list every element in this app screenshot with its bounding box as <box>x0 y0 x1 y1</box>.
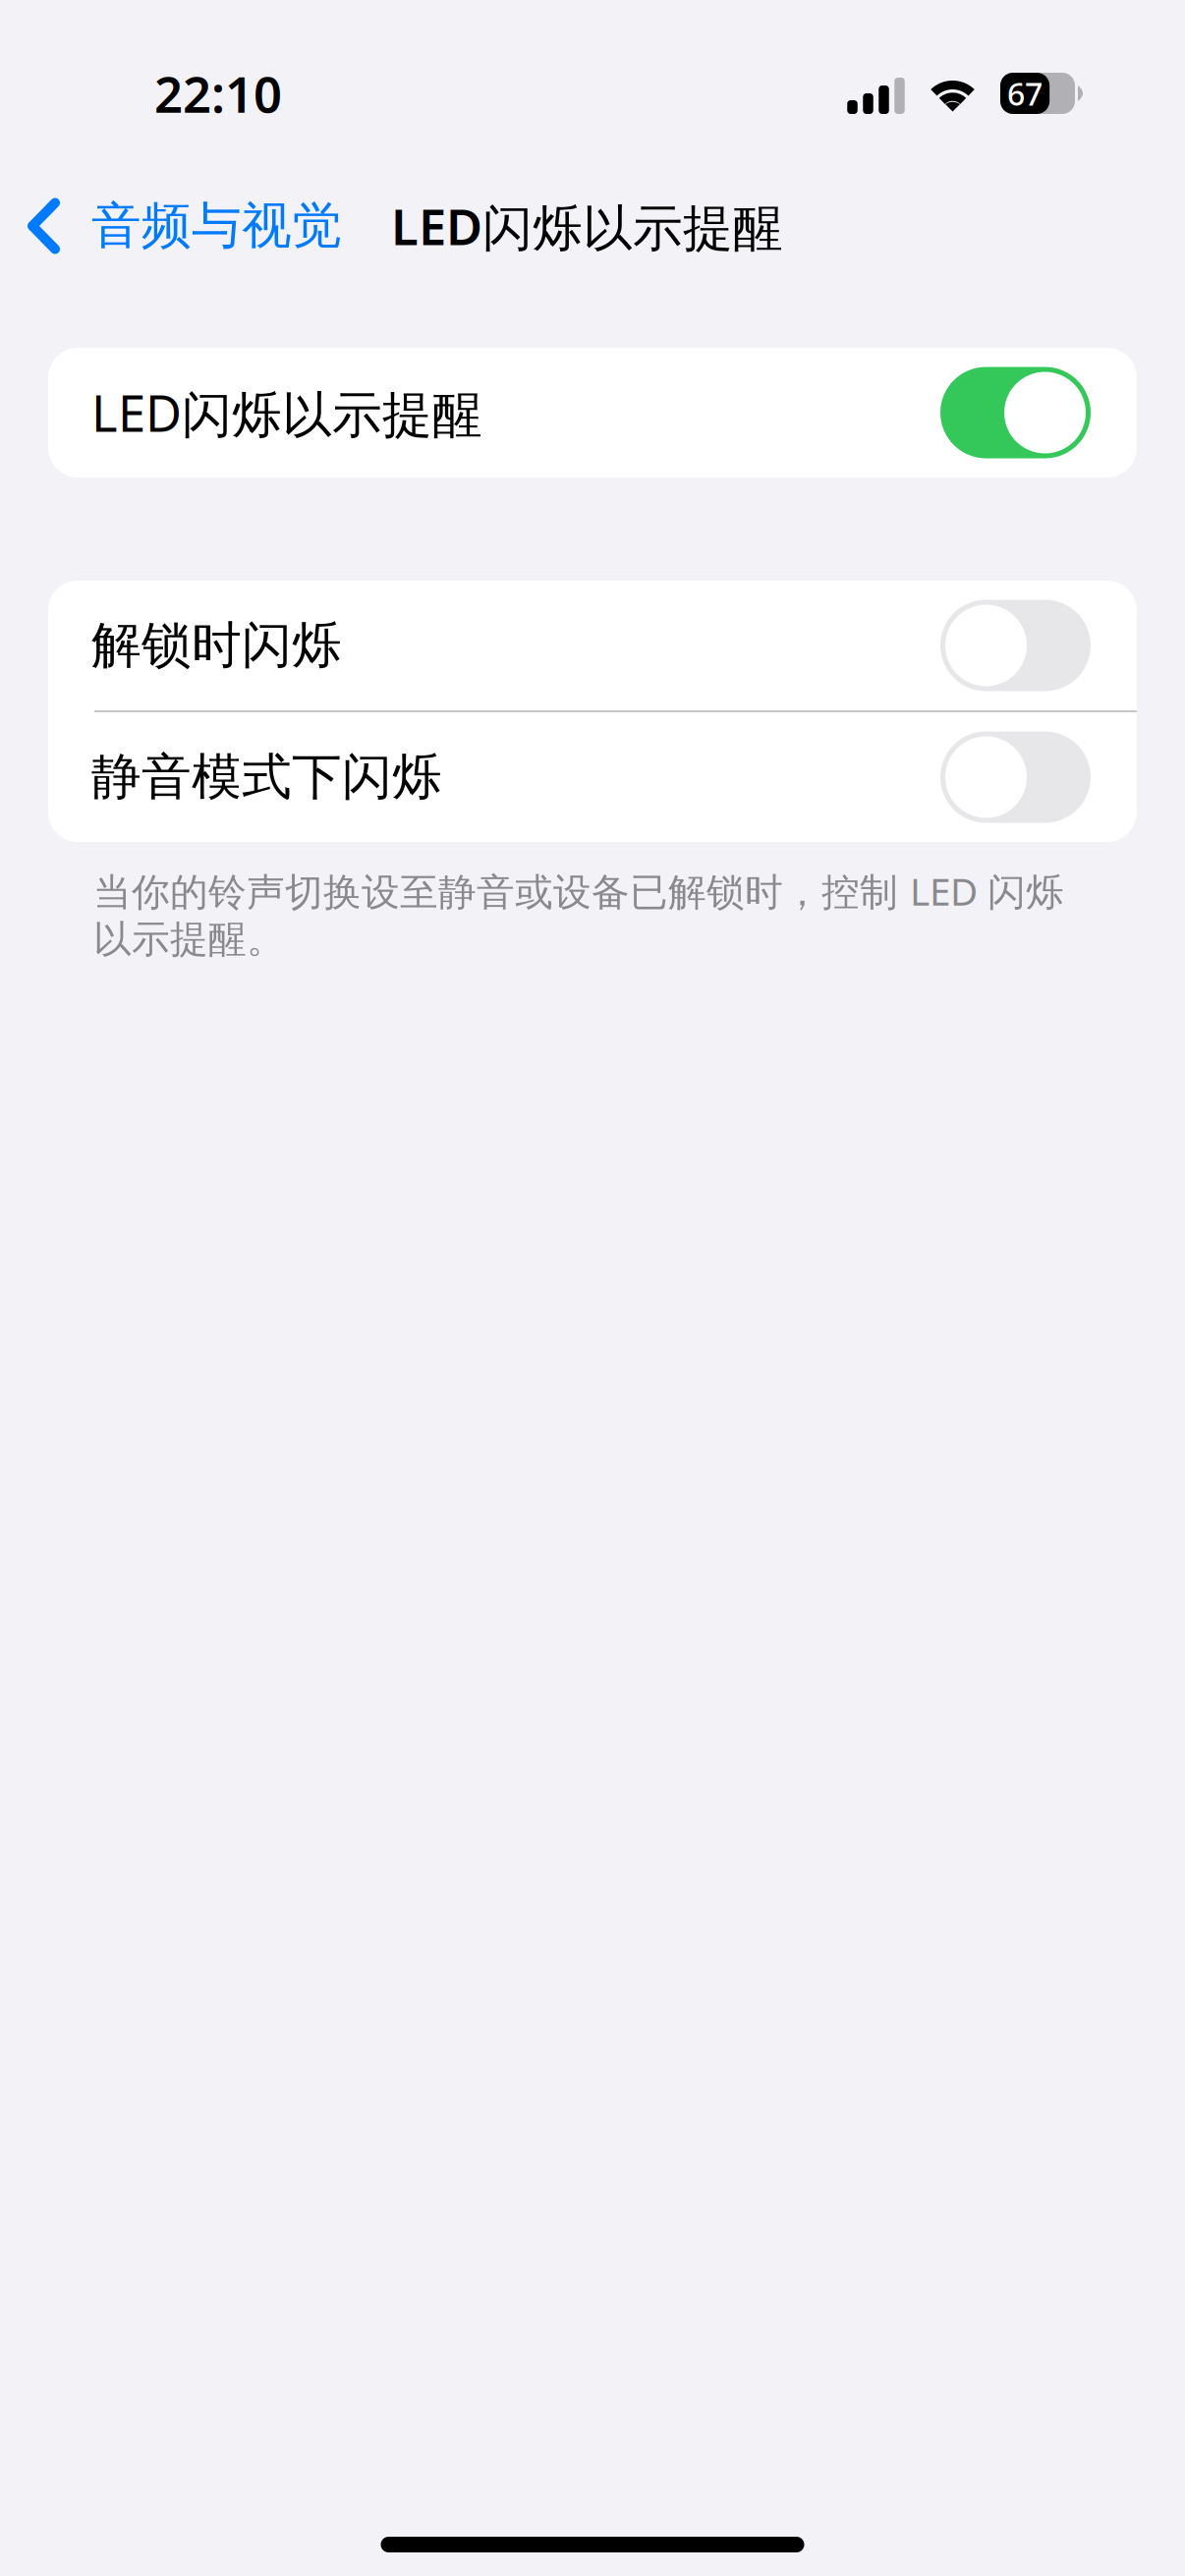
staticText: 音频与视觉 <box>91 195 342 257</box>
button[interactable]: 解锁时闪烁 <box>48 581 1137 710</box>
staticText: 67 <box>1007 73 1043 114</box>
staticText: LED闪烁以示提醒 <box>391 193 783 259</box>
staticText: 当你的铃声切换设至静音或设备已解锁时，控制 LED 闪烁以示提醒。 <box>93 866 1064 963</box>
button[interactable]: 静音模式下闪烁 <box>48 712 1137 842</box>
staticText: LED闪烁以示提醒 <box>91 379 482 446</box>
button[interactable]: LED闪烁以示提醒 <box>48 348 1137 477</box>
staticText: 22:10 <box>154 60 282 126</box>
button[interactable]: 音频与视觉 <box>0 170 342 282</box>
staticText: 解锁时闪烁 <box>91 615 342 676</box>
staticText: 静音模式下闪烁 <box>91 747 442 808</box>
